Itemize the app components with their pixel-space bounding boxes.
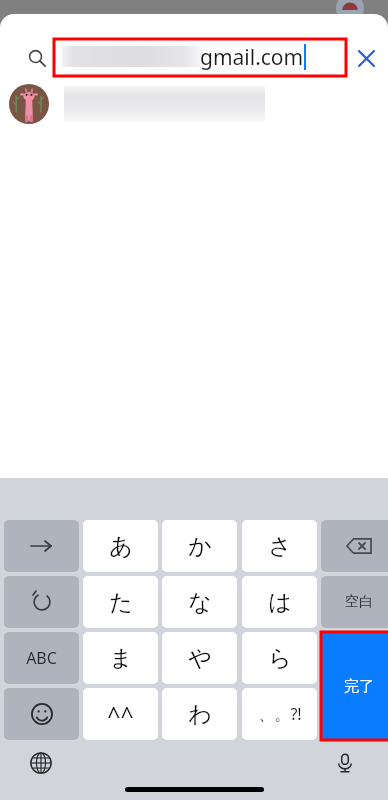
button[interactable]: gmail.com [54, 39, 346, 76]
staticText: ら [268, 644, 292, 673]
button[interactable]: あ [83, 520, 158, 572]
staticText: や [188, 644, 212, 673]
button[interactable]: ABC [4, 632, 79, 684]
staticText: か [188, 532, 212, 561]
button[interactable]: Space [321, 576, 388, 628]
button[interactable]: Next candidate [4, 520, 79, 572]
button[interactable]: わ [162, 688, 237, 740]
button[interactable]: 、。?! [242, 688, 317, 740]
button[interactable]: ^^ [83, 688, 158, 740]
staticText: は [268, 588, 292, 617]
staticText: 空白 [345, 593, 373, 611]
button[interactable]: Switch keyboard language [26, 748, 56, 778]
staticText: な [188, 588, 212, 617]
staticText: あ [109, 532, 133, 561]
button[interactable]: 完了 [321, 632, 388, 740]
staticText: 完了 [344, 677, 374, 696]
staticText: ABC [26, 647, 57, 669]
staticText: た [109, 588, 133, 617]
button[interactable]: は [242, 576, 317, 628]
button[interactable]: や [162, 632, 237, 684]
button[interactable]: ま [83, 632, 158, 684]
button[interactable]: か [162, 520, 237, 572]
staticText: 、。?! [258, 703, 302, 725]
button[interactable]: Emoji [4, 688, 79, 740]
button[interactable]: Clear search [350, 42, 382, 74]
button[interactable]: な [162, 576, 237, 628]
button[interactable]: ら [242, 632, 317, 684]
staticText: さ [268, 532, 292, 561]
button[interactable]: た [83, 576, 158, 628]
button[interactable]: Voice input [330, 748, 360, 778]
button[interactable]: さ [242, 520, 317, 572]
staticText: ま [109, 644, 133, 673]
staticText: gmail.com [200, 43, 304, 72]
button[interactable]: Search [22, 43, 52, 73]
button[interactable] [0, 76, 388, 132]
button[interactable]: Backspace [321, 520, 388, 572]
staticText: わ [188, 700, 212, 729]
staticText: ^^ [107, 699, 134, 730]
button[interactable]: Undo [4, 576, 79, 628]
